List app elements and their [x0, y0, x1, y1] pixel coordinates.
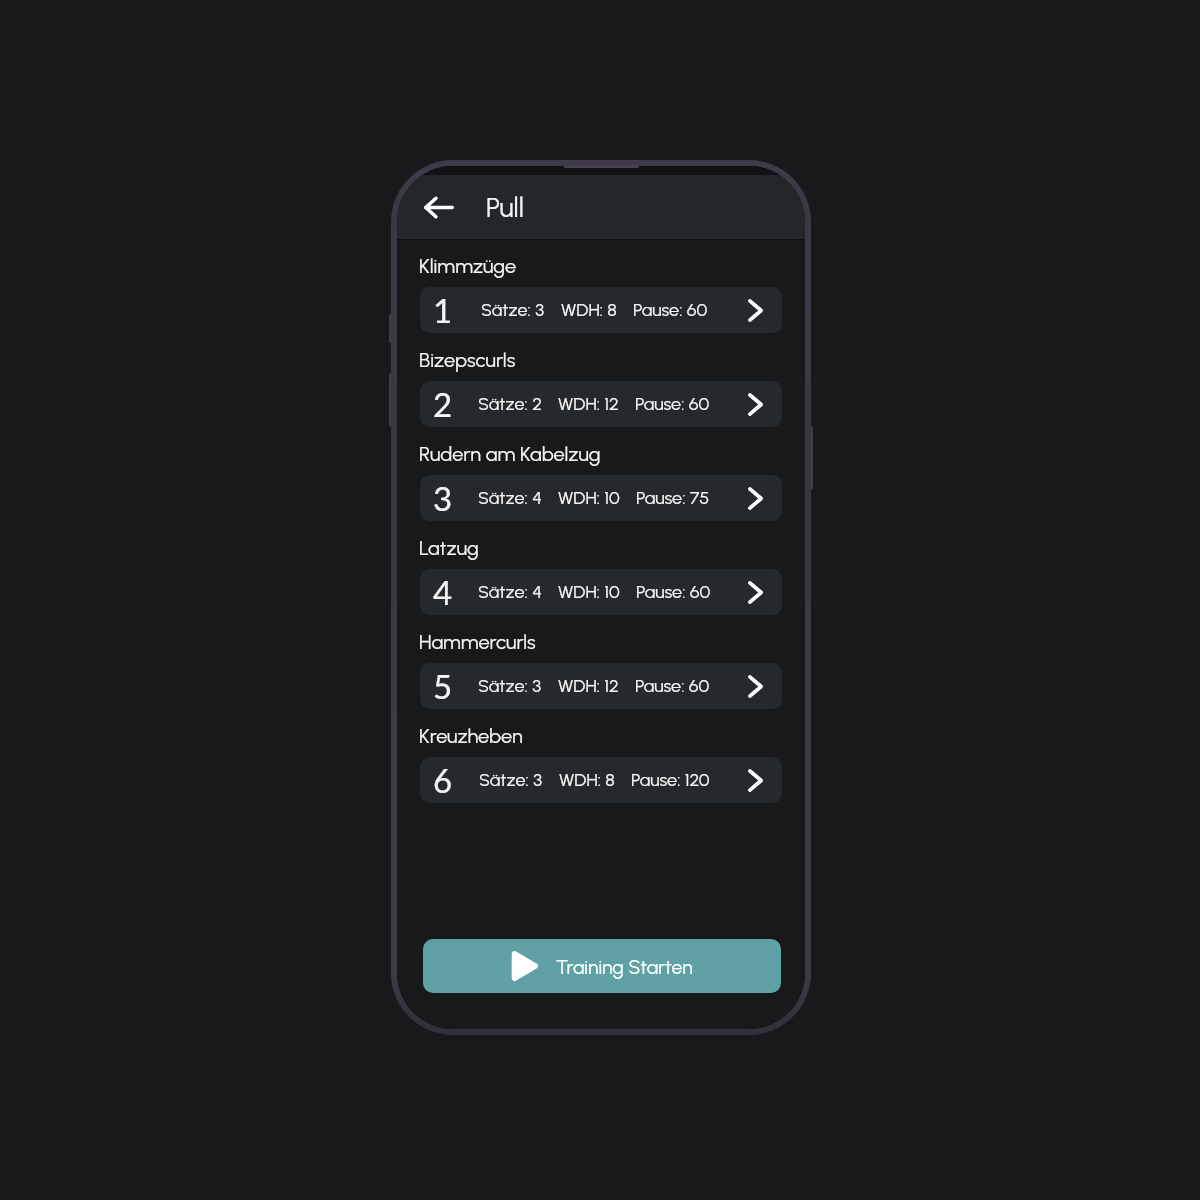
staticText: Sätze: 3 — [479, 769, 543, 791]
staticText: Latzug — [419, 536, 479, 560]
staticText: Hammercurls — [419, 630, 536, 654]
button[interactable]: 5 — [420, 663, 782, 709]
staticText: 3 — [433, 478, 453, 518]
button[interactable]: Back — [419, 187, 459, 227]
button[interactable]: 4 — [420, 569, 782, 615]
staticText: Pause: 60 — [635, 393, 710, 415]
staticText: Pause: 60 — [635, 675, 710, 697]
staticText: Sätze: 4 — [478, 487, 542, 509]
staticText: WDH: 12 — [558, 393, 619, 415]
staticText: 2 — [433, 384, 453, 424]
staticText: WDH: 12 — [558, 675, 619, 697]
staticText: Sätze: 3 — [481, 299, 545, 321]
staticText: Pull — [486, 191, 524, 223]
staticText: WDH: 8 — [561, 299, 617, 321]
staticText: Sätze: 3 — [478, 675, 542, 697]
staticText: Klimmzüge — [419, 254, 517, 278]
button[interactable]: 1 — [420, 287, 782, 333]
button[interactable]: 6 — [420, 757, 782, 803]
staticText: 6 — [433, 760, 453, 800]
staticText: Pause: 120 — [631, 769, 710, 791]
staticText: WDH: 8 — [559, 769, 615, 791]
button[interactable]: Training Starten — [423, 939, 781, 993]
staticText: WDH: 10 — [558, 581, 620, 603]
staticText: Bizepscurls — [419, 348, 516, 372]
staticText: Rudern am Kabelzug — [419, 442, 601, 466]
button[interactable]: 3 — [420, 475, 782, 521]
staticText: 4 — [433, 572, 453, 612]
staticText: WDH: 10 — [558, 487, 620, 509]
staticText: Sätze: 2 — [478, 393, 542, 415]
staticText: Training Starten — [556, 955, 693, 978]
staticText: Kreuzheben — [419, 724, 523, 748]
staticText: Pause: 60 — [633, 299, 708, 321]
staticText: 5 — [433, 666, 453, 706]
button[interactable]: 2 — [420, 381, 782, 427]
staticText: Pause: 60 — [636, 581, 711, 603]
staticText: Pause: 75 — [636, 487, 710, 509]
staticText: 1 — [433, 290, 453, 330]
staticText: Sätze: 4 — [478, 581, 542, 603]
